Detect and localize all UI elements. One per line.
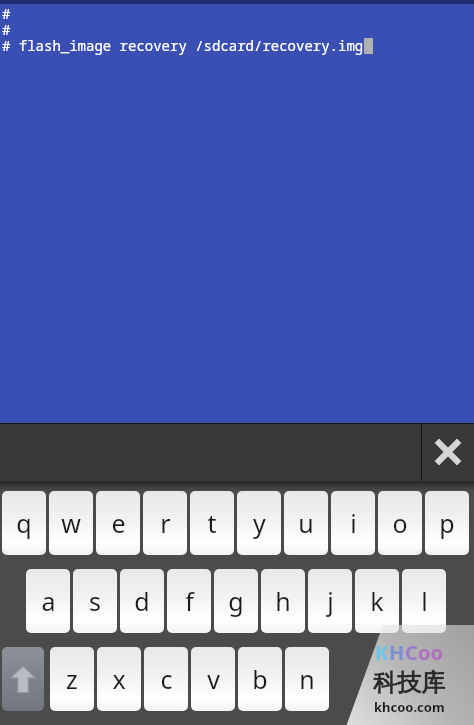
button[interactable]: y <box>237 491 281 555</box>
staticText: i <box>350 506 357 540</box>
staticText: H <box>389 639 405 666</box>
staticText: q <box>16 506 32 540</box>
button[interactable]: e <box>96 491 140 555</box>
staticText: d <box>134 584 150 618</box>
staticText: u <box>298 506 314 540</box>
staticText: # <box>2 4 11 20</box>
button[interactable]: c <box>144 647 188 711</box>
staticText: oo <box>418 639 443 666</box>
button[interactable]: n <box>285 647 329 711</box>
staticText: a <box>41 584 56 618</box>
staticText: o <box>392 506 408 540</box>
staticText: khcoo.com <box>374 698 445 716</box>
button[interactable]: w <box>49 491 93 555</box>
button[interactable]: x <box>97 647 141 711</box>
staticText: s <box>89 584 101 618</box>
staticText: z <box>66 662 78 696</box>
button[interactable]: k <box>355 569 399 633</box>
staticText: h <box>275 584 291 618</box>
button[interactable]: s <box>73 569 117 633</box>
staticText: C <box>405 639 418 666</box>
button[interactable]: v <box>191 647 235 711</box>
button[interactable]: a <box>26 569 70 633</box>
button[interactable]: g <box>214 569 258 633</box>
button[interactable]: r <box>143 491 187 555</box>
button[interactable]: p <box>425 491 469 555</box>
staticText: v <box>207 662 220 696</box>
button[interactable]: f <box>167 569 211 633</box>
button[interactable]: t <box>190 491 234 555</box>
staticText: # <box>2 20 11 36</box>
staticText: r <box>160 506 171 540</box>
staticText: b <box>252 662 268 696</box>
staticText: p <box>439 506 455 540</box>
staticText: e <box>111 506 126 540</box>
staticText: w <box>61 506 81 540</box>
staticText: K <box>375 639 389 666</box>
staticText: g <box>228 584 244 618</box>
button[interactable]: z <box>50 647 94 711</box>
staticText: y <box>253 506 266 540</box>
button[interactable]: u <box>284 491 328 555</box>
button[interactable]: l <box>402 569 446 633</box>
button[interactable]: o <box>378 491 422 555</box>
button[interactable]: q <box>2 491 46 555</box>
button[interactable]: i <box>331 491 375 555</box>
staticText: f <box>185 584 194 618</box>
staticText: n <box>299 662 315 696</box>
staticText: # flash_image recovery /sdcard/recovery.… <box>2 36 364 55</box>
button[interactable]: d <box>120 569 164 633</box>
button[interactable]: j <box>308 569 352 633</box>
staticText: k <box>370 584 384 618</box>
staticText: 科技库 <box>373 668 445 698</box>
button[interactable]: Shift <box>2 647 44 711</box>
staticText: t <box>207 506 217 540</box>
staticText: x <box>112 662 126 696</box>
staticText: l <box>421 584 428 618</box>
staticText: j <box>327 584 334 618</box>
button[interactable]: b <box>238 647 282 711</box>
staticText: c <box>160 662 173 696</box>
button[interactable]: Close keyboard <box>422 423 474 481</box>
button[interactable]: h <box>261 569 305 633</box>
